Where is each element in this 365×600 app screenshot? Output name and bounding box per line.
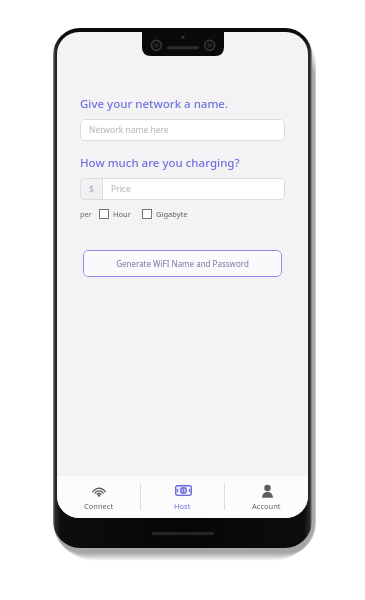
button[interactable]: Hour — [99, 209, 131, 219]
staticText: $ — [89, 183, 94, 195]
button[interactable]: Gigabyte — [142, 209, 188, 219]
staticText: Give your network a name. — [80, 96, 229, 112]
staticText: Price — [111, 183, 131, 195]
staticText: How much are you charging? — [80, 155, 240, 171]
staticText: Generate WiFI Name and Password — [116, 258, 249, 269]
button[interactable]: Connect — [57, 476, 140, 518]
button[interactable]: Generate WiFI Name and Password — [83, 250, 282, 277]
staticText: Host — [174, 501, 191, 511]
button[interactable]: Network name here — [80, 119, 285, 141]
staticText: Account — [252, 501, 281, 511]
staticText: per — [80, 209, 92, 219]
staticText: Connect — [84, 501, 114, 511]
button[interactable]: Account — [225, 476, 308, 518]
button[interactable]: Host — [141, 476, 224, 518]
button[interactable]: $ — [80, 178, 285, 200]
staticText: Gigabyte — [156, 209, 188, 219]
staticText: Hour — [113, 209, 131, 219]
staticText: Network name here — [89, 124, 169, 136]
